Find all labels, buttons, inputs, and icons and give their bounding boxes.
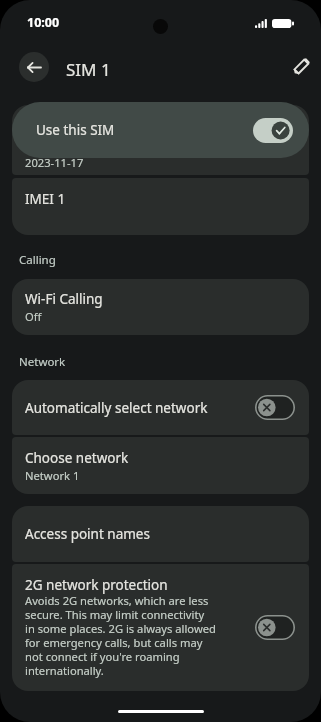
button[interactable]: Choose network — [12, 437, 309, 494]
staticText: Wi-Fi Calling — [25, 290, 103, 308]
button[interactable]: Use this SIM — [12, 102, 309, 158]
button[interactable]: Automatically select network — [12, 380, 309, 435]
staticText: SIM 1 — [66, 58, 111, 81]
staticText: 10:00 — [27, 14, 60, 31]
staticText: Use this SIM — [36, 121, 115, 139]
staticText: Avoids 2G networks, which are less secur… — [25, 593, 216, 678]
button[interactable]: 2023-11-17 — [12, 105, 309, 175]
staticText: 2G network protection — [25, 576, 168, 594]
button[interactable]: Back — [19, 52, 49, 82]
button[interactable]: Wi-Fi Calling — [12, 279, 309, 335]
staticText: Automatically select network — [25, 399, 208, 417]
staticText: Access point names — [25, 525, 150, 543]
staticText: Network — [19, 354, 66, 370]
staticText: Calling — [19, 252, 56, 268]
staticText: Network 1 — [25, 468, 80, 483]
staticText: IMEI 1 — [25, 190, 66, 208]
staticText: Off — [25, 309, 42, 324]
staticText: Choose network — [25, 449, 129, 467]
button[interactable]: Edit — [288, 54, 314, 80]
button[interactable]: 2G network protection — [12, 564, 309, 691]
button[interactable]: IMEI 1 — [12, 178, 309, 235]
staticText: 2023-11-17 — [25, 155, 84, 170]
button[interactable]: Access point names — [12, 506, 309, 562]
